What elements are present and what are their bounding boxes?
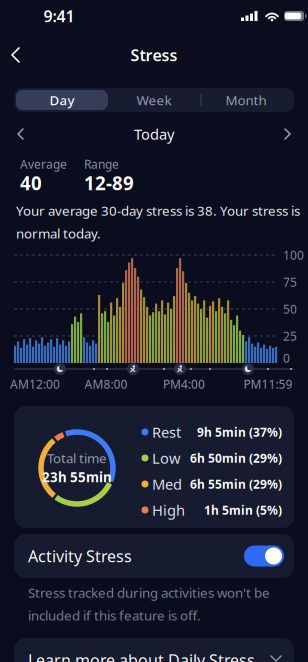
- staticText: Total time: [47, 449, 107, 467]
- staticText: 100: [283, 247, 304, 263]
- staticText: 0: [283, 350, 290, 366]
- staticText: Learn more about Daily Stress: [28, 649, 255, 662]
- staticText: 9:41: [43, 5, 74, 27]
- staticText: Range: [84, 156, 119, 172]
- staticText: PM4:00: [163, 376, 205, 392]
- staticText: 6h 50min (29%): [190, 450, 282, 466]
- staticText: 50: [283, 301, 297, 317]
- button[interactable]: Month: [200, 89, 292, 111]
- staticText: 9h 5min (37%): [197, 424, 282, 440]
- button[interactable]: Back: [10, 43, 34, 67]
- staticText: PM11:59: [243, 376, 292, 392]
- button[interactable]: Week: [108, 89, 200, 111]
- staticText: 75: [283, 274, 297, 290]
- staticText: Average: [20, 156, 67, 172]
- staticText: 23h 55min: [42, 468, 112, 486]
- button[interactable]: Learn more about Daily Stress: [14, 638, 294, 662]
- staticText: Today: [134, 124, 174, 144]
- staticText: Day: [49, 91, 74, 109]
- button[interactable]: Previous day: [15, 126, 31, 142]
- staticText: Low: [152, 448, 181, 468]
- staticText: 25: [283, 328, 297, 344]
- staticText: Month: [225, 91, 266, 109]
- staticText: AM12:00: [10, 376, 60, 392]
- staticText: Rest: [152, 422, 181, 442]
- staticText: Your average 30-day stress is 38. Your s…: [16, 202, 300, 242]
- staticText: Activity Stress: [28, 545, 132, 567]
- button[interactable]: Activity Stress: [244, 545, 284, 566]
- button[interactable]: Day: [16, 90, 108, 110]
- staticText: Week: [136, 91, 171, 109]
- staticText: High: [152, 500, 185, 520]
- button[interactable]: Next day: [277, 126, 293, 142]
- staticText: Stress: [130, 44, 177, 66]
- staticText: 12-89: [84, 171, 134, 195]
- staticText: AM8:00: [84, 376, 127, 392]
- staticText: Stress tracked during activities won't b…: [28, 584, 270, 624]
- staticText: 1h 5min (5%): [204, 502, 282, 518]
- staticText: Med: [152, 474, 182, 494]
- staticText: 6h 55min (29%): [190, 476, 282, 492]
- staticText: 40: [20, 171, 42, 195]
